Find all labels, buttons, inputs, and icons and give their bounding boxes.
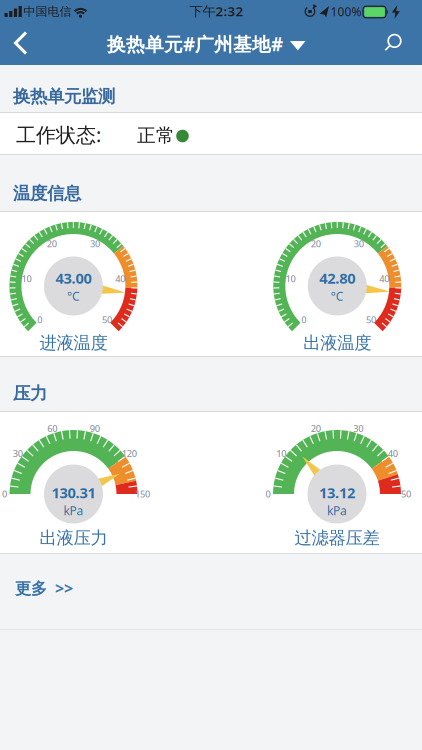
button[interactable]: 搜索: [378, 24, 422, 65]
staticText: 20: [311, 422, 321, 435]
staticText: 150: [135, 488, 150, 500]
staticText: °C: [67, 288, 80, 304]
staticText: 0: [301, 313, 306, 326]
staticText: 10: [276, 447, 286, 460]
staticText: 40: [379, 272, 389, 285]
staticText: 90: [90, 422, 100, 435]
staticText: 50: [102, 313, 112, 326]
staticText: 进液温度: [39, 332, 107, 354]
staticText: 过滤器压差: [294, 527, 379, 549]
staticText: kPa: [63, 502, 83, 518]
button[interactable]: 换热单元#广州基地#: [100, 24, 312, 65]
staticText: 13.12: [319, 483, 355, 502]
staticText: 40: [115, 272, 125, 285]
staticText: 30: [13, 447, 23, 460]
staticText: 120: [122, 447, 137, 460]
staticText: 30: [354, 237, 364, 250]
staticText: 42.80: [319, 268, 355, 288]
staticText: 10: [21, 272, 31, 285]
staticText: 中国电信: [23, 4, 71, 19]
staticText: 0: [265, 488, 270, 500]
staticText: 50: [401, 488, 411, 500]
staticText: 温度信息: [13, 183, 81, 204]
button[interactable]: 返回: [0, 24, 44, 65]
staticText: kPa: [327, 502, 347, 518]
staticText: 正常: [137, 124, 175, 147]
staticText: °C: [331, 288, 344, 304]
staticText: 100%: [330, 3, 361, 19]
staticText: 43.00: [55, 268, 91, 288]
staticText: 60: [47, 422, 57, 435]
staticText: 更多 >>: [15, 577, 73, 599]
staticText: 20: [311, 237, 321, 250]
staticText: 出液温度: [303, 332, 371, 354]
staticText: 换热单元#广州基地#: [107, 32, 283, 56]
staticText: 下午2:32: [189, 2, 243, 20]
staticText: 压力: [13, 383, 47, 404]
staticText: 40: [388, 447, 398, 460]
staticText: 工作状态:: [16, 121, 101, 148]
staticText: 0: [37, 313, 42, 326]
staticText: 50: [366, 313, 376, 326]
staticText: 0: [2, 488, 7, 500]
staticText: 20: [47, 237, 57, 250]
staticText: 30: [353, 422, 363, 435]
staticText: 换热单元监测: [13, 86, 115, 107]
staticText: 30: [90, 237, 100, 250]
staticText: 10: [285, 272, 295, 285]
button[interactable]: 更多 >>: [0, 566, 120, 610]
staticText: 130.31: [51, 483, 95, 502]
staticText: 出液压力: [39, 527, 107, 549]
